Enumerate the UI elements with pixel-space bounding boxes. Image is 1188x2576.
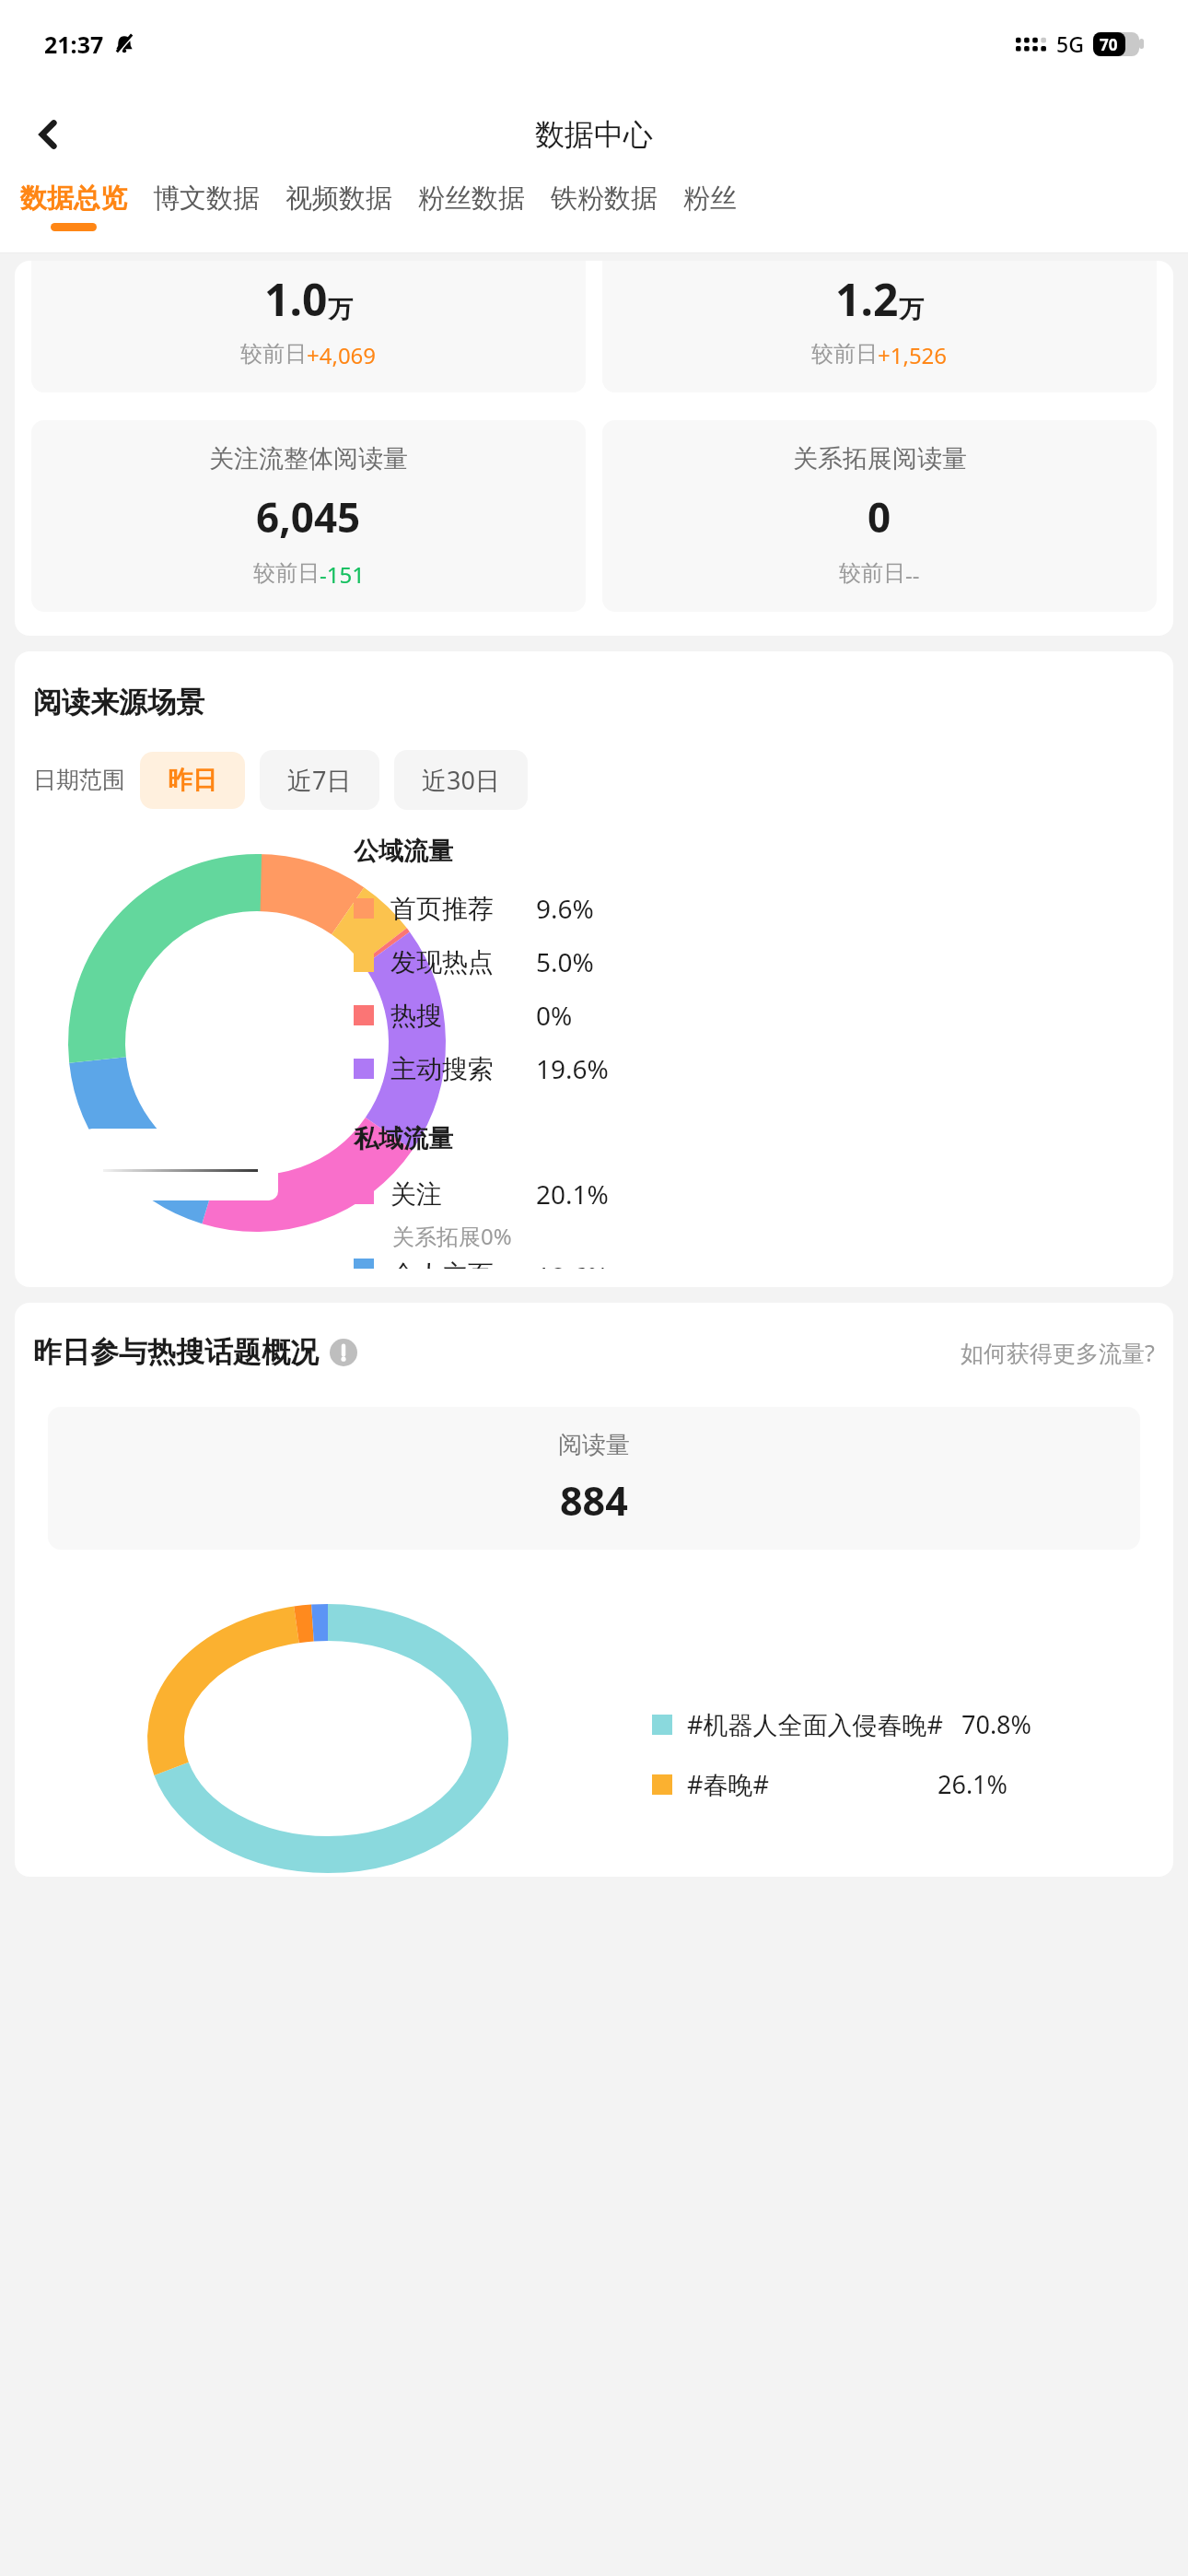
button[interactable]: 博文数据 xyxy=(153,181,260,223)
button[interactable]: Info xyxy=(330,1339,357,1366)
staticText: 9.6% xyxy=(536,891,594,926)
staticText: 5.0% xyxy=(536,944,594,979)
staticText: 70 xyxy=(1100,34,1118,55)
button[interactable]: 视频数据 xyxy=(285,181,392,223)
button[interactable]: 1.0 xyxy=(31,261,586,392)
button[interactable]: Back xyxy=(20,106,77,163)
staticText: +4,069 xyxy=(307,340,377,370)
staticText: 21:37 xyxy=(44,29,104,60)
button[interactable]: 如何获得更多流量? xyxy=(961,1337,1155,1368)
staticText: 主动搜索 xyxy=(390,1053,494,1085)
staticText: 发现热点 xyxy=(390,946,494,978)
staticText: 粉丝 xyxy=(683,181,737,216)
staticText: 较前日 xyxy=(253,559,320,587)
staticText: 70.8% xyxy=(961,1707,1032,1741)
button[interactable]: 热搜 xyxy=(354,989,573,1042)
staticText: 关注 xyxy=(390,1178,442,1211)
button[interactable]: 发现热点 xyxy=(354,935,594,989)
staticText: 阅读量 xyxy=(558,1430,630,1460)
staticText: 如何获得更多流量? xyxy=(961,1337,1155,1368)
staticText: 热搜 xyxy=(390,1000,442,1032)
staticText: 私域流量 xyxy=(354,1123,453,1154)
staticText: 视频数据 xyxy=(285,181,392,216)
staticText: 较前日 xyxy=(811,340,878,368)
staticText: 6,045 xyxy=(256,489,361,544)
staticText: 5G xyxy=(1056,29,1084,58)
button[interactable]: 粉丝 xyxy=(683,181,737,223)
button[interactable]: 昨日 xyxy=(140,752,245,809)
staticText: 1.0 xyxy=(264,269,328,329)
staticText: 公域流量 xyxy=(354,836,453,867)
button[interactable]: 主动搜索 xyxy=(354,1042,609,1095)
button[interactable]: 近30日 xyxy=(394,750,528,810)
staticText: 首页推荐 xyxy=(390,893,494,925)
staticText: 近30日 xyxy=(422,763,500,797)
button[interactable]: 近7日 xyxy=(260,750,379,810)
staticText: 昨日 xyxy=(168,765,217,796)
staticText: 个人主页 xyxy=(390,1259,494,1269)
staticText: 较前日 xyxy=(839,559,905,587)
button[interactable]: 关系拓展阅读量 xyxy=(602,420,1157,612)
staticText: 26.1% xyxy=(938,1767,1008,1801)
staticText: 日期范围 xyxy=(33,766,125,794)
staticText: 关注流整体阅读量 xyxy=(209,443,408,474)
staticText: 关系拓展阅读量 xyxy=(793,443,967,474)
staticText: 19.6% xyxy=(536,1051,609,1086)
staticText: #机器人全面入侵春晚# xyxy=(687,1707,943,1741)
staticText: #春晚# xyxy=(687,1767,769,1801)
staticText: 0 xyxy=(868,489,891,544)
staticText: -151 xyxy=(320,559,365,590)
staticText: 关系拓展0% xyxy=(392,1221,512,1251)
staticText: 近7日 xyxy=(287,763,352,797)
staticText: 阅读来源场景 xyxy=(33,685,204,720)
button[interactable]: 数据总览 xyxy=(20,181,127,231)
staticText: 万 xyxy=(328,294,353,325)
staticText: 数据总览 xyxy=(20,181,127,216)
staticText: 万 xyxy=(899,294,924,325)
staticText: 铁粉数据 xyxy=(551,181,658,216)
staticText: -- xyxy=(905,559,920,590)
staticText: 数据中心 xyxy=(535,116,653,153)
staticText: 1.2 xyxy=(835,269,899,329)
staticText: 昨日参与热搜话题概况 xyxy=(33,1334,319,1370)
staticText: 0% xyxy=(536,998,573,1033)
button[interactable]: 首页推荐 xyxy=(354,882,594,935)
button[interactable]: 粉丝数据 xyxy=(418,181,525,223)
staticText: 粉丝数据 xyxy=(418,181,525,216)
staticText: 博文数据 xyxy=(153,181,260,216)
staticText: 884 xyxy=(560,1473,628,1528)
staticText: 较前日 xyxy=(240,340,307,368)
staticText: 20.1% xyxy=(536,1177,609,1212)
button[interactable]: 个人主页 xyxy=(354,1259,609,1269)
button[interactable]: 关注 xyxy=(354,1167,609,1221)
button[interactable]: 铁粉数据 xyxy=(551,181,658,223)
staticText: 18.6% xyxy=(536,1259,609,1269)
staticText: +1,526 xyxy=(878,340,948,370)
button[interactable]: 1.2 xyxy=(602,261,1157,392)
button[interactable]: 关注流整体阅读量 xyxy=(31,420,586,612)
